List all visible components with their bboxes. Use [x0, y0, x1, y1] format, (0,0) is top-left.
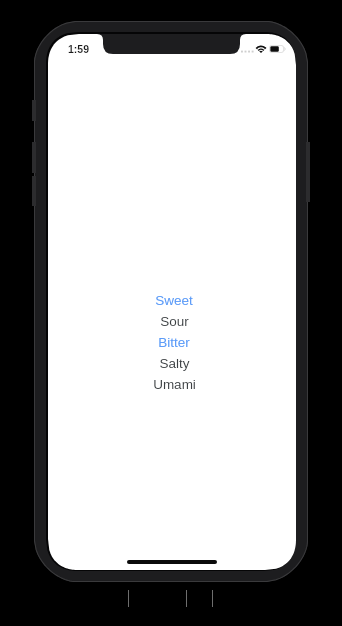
button[interactable]: Salty	[50, 353, 296, 374]
button[interactable]: Bitter	[50, 332, 296, 353]
staticText: Sour	[160, 314, 189, 329]
button[interactable]: Umami	[50, 374, 296, 395]
button[interactable]: Sour	[50, 311, 296, 332]
staticText: Bitter	[158, 335, 190, 350]
staticText: Sweet	[155, 293, 193, 308]
staticText: 1:59	[68, 43, 90, 55]
button[interactable]: Sweet	[50, 290, 296, 311]
staticText: Umami	[153, 377, 196, 392]
staticText: Salty	[159, 356, 190, 371]
